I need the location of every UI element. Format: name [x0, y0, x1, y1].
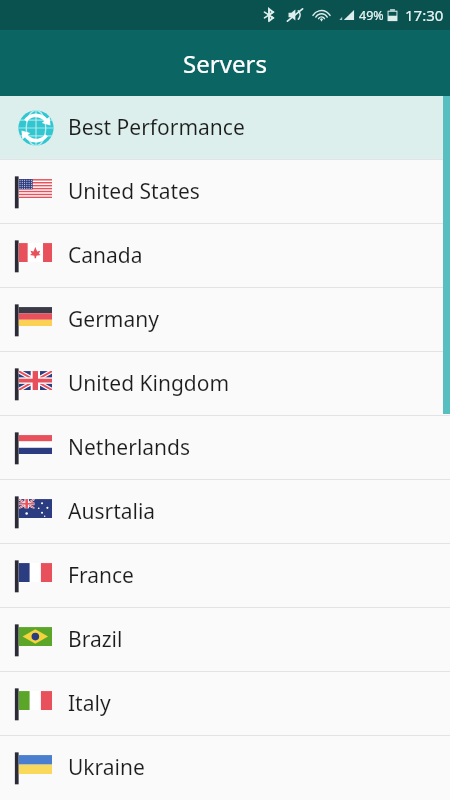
button[interactable]: United Kingdom — [0, 352, 450, 415]
button[interactable]: Best Performance — [0, 96, 450, 159]
button[interactable]: Canada — [0, 224, 450, 287]
button[interactable]: Brazil — [0, 608, 450, 671]
staticText: France — [68, 561, 134, 590]
staticText: United Kingdom — [68, 369, 230, 398]
staticText: 49% — [359, 7, 384, 24]
button[interactable]: Netherlands — [0, 416, 450, 479]
staticText: Ukraine — [68, 753, 145, 782]
button[interactable]: Ausrtalia — [0, 480, 450, 543]
button[interactable]: Italy — [0, 672, 450, 735]
staticText: Servers — [183, 47, 267, 80]
button[interactable]: France — [0, 544, 450, 607]
staticText: Best Performance — [68, 113, 245, 142]
staticText: Ausrtalia — [68, 497, 156, 526]
staticText: Netherlands — [68, 433, 191, 462]
button[interactable]: Ukraine — [0, 736, 450, 799]
button[interactable]: United States — [0, 160, 450, 223]
staticText: Canada — [68, 241, 143, 270]
staticText: United States — [68, 177, 200, 206]
staticText: Brazil — [68, 625, 123, 654]
staticText: Germany — [68, 305, 159, 334]
staticText: Italy — [68, 689, 111, 718]
staticText: 17:30 — [405, 5, 444, 25]
button[interactable]: Germany — [0, 288, 450, 351]
